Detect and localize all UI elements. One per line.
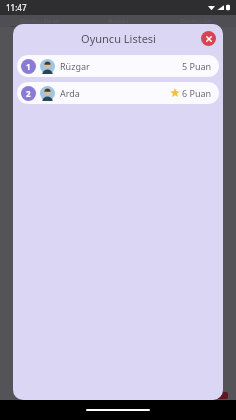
staticText: Oyuncu Ekran..: [20, 17, 63, 25]
staticText: 11:47: [6, 2, 27, 13]
staticText: 1: [26, 61, 31, 72]
button[interactable]: 2: [17, 82, 219, 104]
staticText: Rüzgar: [60, 60, 182, 72]
staticText: 5 Puan: [182, 60, 212, 72]
staticText: 6 Puan: [182, 87, 212, 99]
staticText: Oyuncu Gir: [180, 17, 212, 25]
staticText: 2: [26, 88, 31, 99]
button[interactable]: 1: [17, 55, 219, 77]
staticText: Bisiklet: [108, 17, 129, 25]
button[interactable]: Kapat: [201, 31, 216, 46]
staticText: Arda: [60, 87, 170, 99]
staticText: Oyuncu Listesi: [81, 31, 156, 46]
